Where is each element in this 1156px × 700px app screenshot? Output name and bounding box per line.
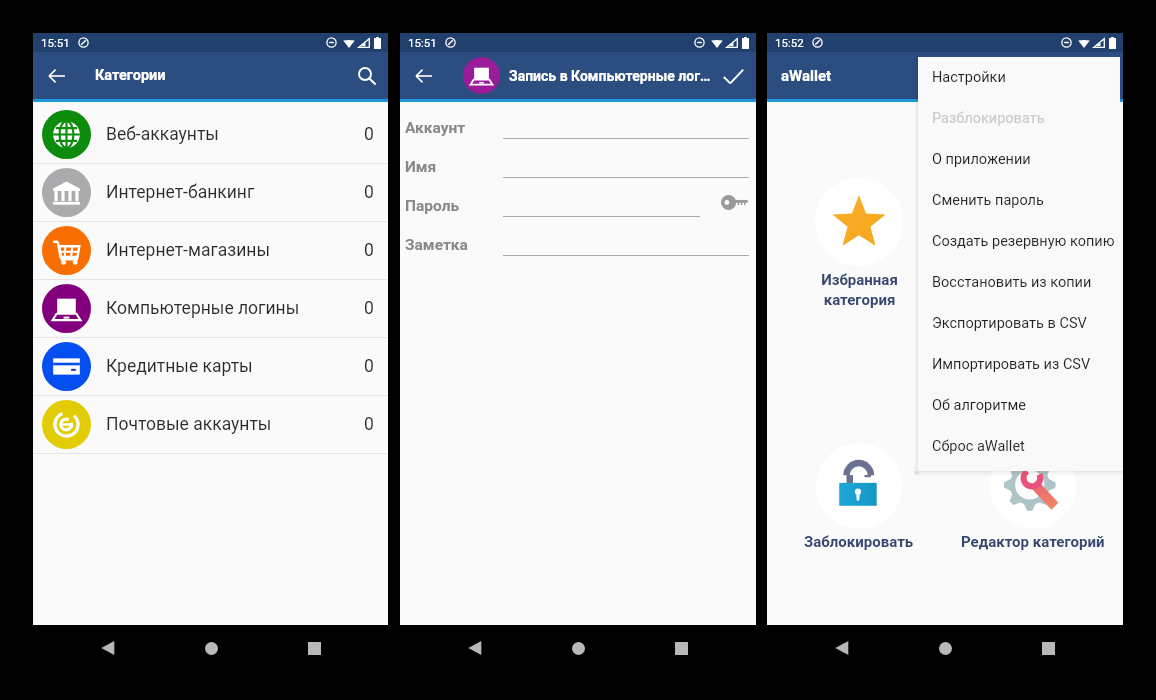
staticText: Восстановить из копии bbox=[932, 274, 1092, 291]
button[interactable]: Почтовые аккаунты bbox=[33, 396, 388, 453]
staticText: Настройки bbox=[932, 69, 1006, 86]
staticText: 0 bbox=[364, 298, 374, 319]
staticText: 0 bbox=[364, 240, 374, 261]
staticText: Интернет-магазины bbox=[106, 240, 270, 261]
button[interactable]: Создать резервную копию bbox=[918, 221, 1120, 262]
staticText: Кредитные карты bbox=[106, 356, 253, 377]
staticText: Веб-аккаунты bbox=[106, 124, 219, 145]
button[interactable]: Кредитные карты bbox=[33, 338, 388, 395]
staticText: Пароль bbox=[405, 197, 460, 215]
button[interactable]: Настройки bbox=[918, 57, 1120, 98]
staticText: 0 bbox=[364, 124, 374, 145]
button[interactable]: Search bbox=[350, 59, 384, 93]
button[interactable]: Generate password bbox=[721, 188, 749, 216]
staticText: Создать резервную копию bbox=[932, 233, 1115, 250]
button[interactable]: Home bbox=[925, 628, 965, 668]
staticText: Импортировать из CSV bbox=[932, 356, 1091, 373]
button[interactable]: Back bbox=[88, 628, 128, 668]
staticText: Заметка bbox=[405, 236, 468, 254]
button[interactable]: Back bbox=[40, 59, 74, 93]
button[interactable]: Сброс aWallet bbox=[918, 426, 1120, 467]
staticText: Сменить пароль bbox=[932, 192, 1044, 209]
staticText: О приложении bbox=[932, 151, 1031, 168]
staticText: 15:51 bbox=[41, 36, 70, 49]
staticText: Избранная категория bbox=[821, 271, 898, 308]
staticText: 0 bbox=[364, 414, 374, 435]
staticText: Редактор категорий bbox=[961, 533, 1105, 551]
button[interactable]: Recents bbox=[661, 628, 701, 668]
button[interactable]: Back bbox=[822, 628, 862, 668]
staticText: 15:52 bbox=[775, 36, 804, 49]
button[interactable]: Аккаунт bbox=[400, 108, 756, 147]
button[interactable]: Избранная категория bbox=[769, 178, 949, 308]
button[interactable]: Об алгоритме bbox=[918, 385, 1120, 426]
button[interactable]: Восстановить из копии bbox=[918, 262, 1120, 303]
staticText: Заблокировать bbox=[804, 533, 914, 551]
button[interactable]: Веб-аккаунты bbox=[33, 106, 388, 163]
button[interactable]: Home bbox=[191, 628, 231, 668]
button[interactable]: Имя bbox=[400, 147, 756, 186]
staticText: Категории bbox=[95, 67, 166, 84]
staticText: Запись в Компьютерные лог… bbox=[509, 68, 716, 84]
staticText: 15:51 bbox=[408, 36, 437, 49]
button[interactable]: Back bbox=[407, 59, 441, 93]
staticText: Экспортировать в CSV bbox=[932, 315, 1087, 332]
staticText: Интернет-банкинг bbox=[106, 182, 255, 203]
staticText: 0 bbox=[364, 356, 374, 377]
button[interactable]: Save bbox=[716, 59, 750, 93]
button[interactable]: Редактор категорий bbox=[943, 443, 1123, 551]
button[interactable]: Recents bbox=[1028, 628, 1068, 668]
staticText: Компьютерные логины bbox=[106, 298, 300, 319]
button[interactable]: Интернет-банкинг bbox=[33, 164, 388, 221]
button[interactable]: Компьютерные логины bbox=[33, 280, 388, 337]
button[interactable]: Интернет-магазины bbox=[33, 222, 388, 279]
staticText: Об алгоритме bbox=[932, 397, 1027, 414]
button[interactable]: О приложении bbox=[918, 139, 1120, 180]
button[interactable]: Экспортировать в CSV bbox=[918, 303, 1120, 344]
button[interactable]: Сменить пароль bbox=[918, 180, 1120, 221]
button[interactable]: Back bbox=[455, 628, 495, 668]
button[interactable]: Заметка bbox=[400, 225, 756, 264]
staticText: Имя bbox=[405, 158, 437, 176]
button[interactable]: Home bbox=[558, 628, 598, 668]
staticText: 0 bbox=[364, 182, 374, 203]
staticText: Разблокировать bbox=[932, 110, 1045, 127]
button[interactable]: Заблокировать bbox=[769, 443, 949, 551]
button[interactable]: Импортировать из CSV bbox=[918, 344, 1120, 385]
staticText: Аккаунт bbox=[405, 119, 466, 137]
staticText: Сброс aWallet bbox=[932, 438, 1025, 455]
staticText: aWallet bbox=[781, 67, 832, 85]
staticText: Почтовые аккаунты bbox=[106, 414, 272, 435]
button[interactable]: Разблокировать bbox=[918, 98, 1120, 139]
button[interactable]: Пароль bbox=[400, 186, 756, 225]
button[interactable]: Recents bbox=[294, 628, 334, 668]
